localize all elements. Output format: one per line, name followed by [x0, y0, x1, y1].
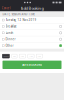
button[interactable]: 8:00 am [2, 54, 10, 58]
button[interactable]: Tuesday, 12 Nov 2019 [0, 17, 64, 23]
button[interactable]: Breakfast [0, 23, 64, 30]
staticText: SAVE BOOKING [22, 63, 42, 66]
button[interactable]: Other [0, 43, 64, 49]
staticText: 11:00 [29, 55, 33, 57]
staticText: 8:00 am [3, 55, 8, 57]
staticText: Add Booking [20, 6, 43, 11]
staticText: Breakfast [6, 25, 17, 28]
button[interactable]: 10:00 [19, 54, 26, 58]
staticText: Lunch [6, 31, 14, 35]
staticText: Cancel [2, 6, 11, 10]
staticText: Other [6, 44, 14, 47]
staticText: Tuesday, 12 Nov 2019 [6, 18, 37, 22]
button[interactable]: SAVE BOOKING [2, 61, 61, 69]
button[interactable]: Cancel [0, 5, 13, 11]
button[interactable]: Dinner [0, 36, 64, 43]
button[interactable]: 9:00 [12, 54, 17, 58]
staticText: 12:00 [37, 55, 41, 57]
staticText: Dinner [6, 37, 16, 41]
staticText: 9:00 [13, 55, 16, 57]
button[interactable]: Lunch [0, 30, 64, 36]
staticText: DATE, SESSION AND TIME [2, 12, 34, 16]
button[interactable]: 12:00 [36, 54, 43, 58]
button[interactable]: 11:00 [28, 54, 34, 58]
staticText: 10:00 [20, 55, 24, 57]
